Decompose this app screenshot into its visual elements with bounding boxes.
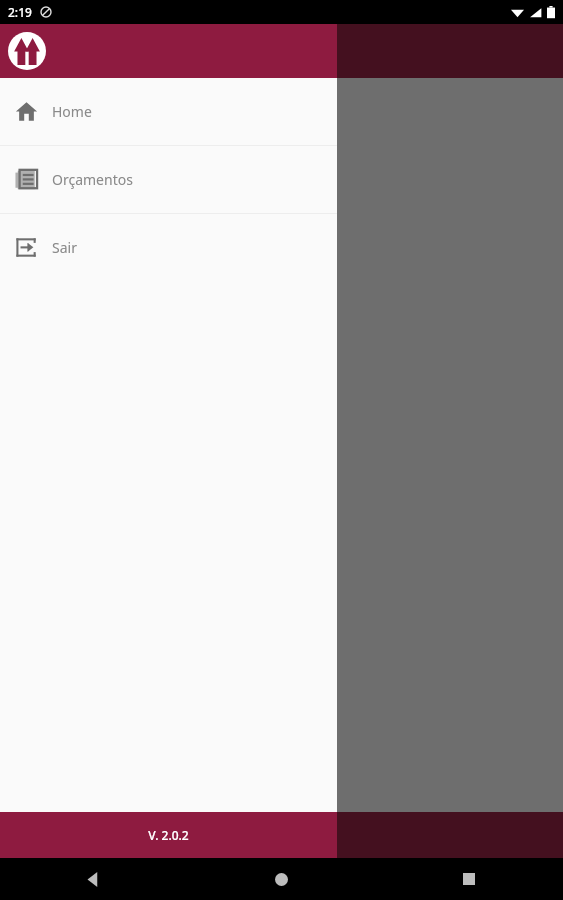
staticText: Orçamentos: [52, 170, 133, 189]
button[interactable]: V. 2.0.2: [0, 812, 337, 858]
other: App logo: [8, 32, 46, 70]
button[interactable]: Home: [187, 858, 375, 900]
staticText: Sair: [52, 238, 77, 257]
staticText: 2:19: [8, 4, 32, 20]
button[interactable]: Sair: [0, 214, 337, 281]
button[interactable]: Home: [0, 78, 337, 145]
button[interactable]: Recent apps: [375, 858, 563, 900]
button[interactable]: Orçamentos: [0, 146, 337, 213]
staticText: V. 2.0.2: [148, 827, 189, 843]
button[interactable]: Back: [0, 858, 187, 900]
staticText: Home: [52, 102, 92, 121]
